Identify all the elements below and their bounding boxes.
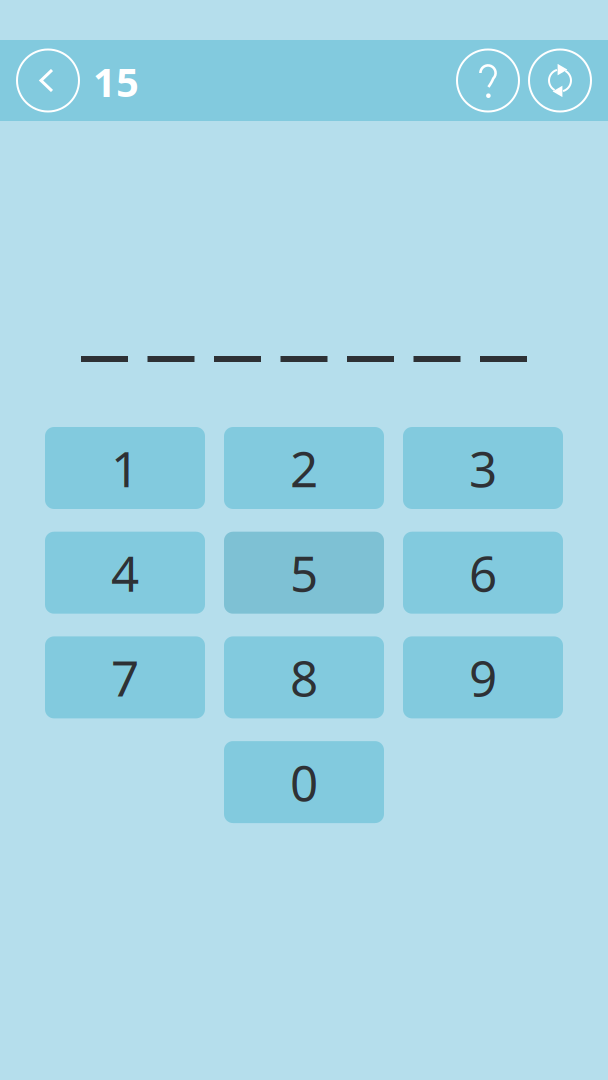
button[interactable]: Restart [529, 49, 591, 111]
button[interactable]: 7 [45, 636, 205, 718]
button[interactable]: 9 [403, 636, 563, 718]
staticText: 4 [111, 540, 139, 605]
button[interactable]: 0 [224, 741, 384, 823]
button[interactable]: 4 [45, 532, 205, 614]
staticText: 1 [111, 435, 139, 501]
staticText: 5 [290, 540, 318, 605]
button[interactable]: Hint [457, 49, 519, 111]
staticText: 15 [93, 55, 139, 108]
staticText: 0 [290, 749, 318, 815]
staticText: 7 [111, 645, 139, 710]
button[interactable]: 6 [403, 532, 563, 614]
button[interactable]: 3 [403, 427, 563, 509]
staticText: 2 [290, 435, 318, 501]
staticText: 6 [469, 540, 497, 605]
staticText: 9 [469, 645, 497, 710]
button[interactable]: 5 [224, 532, 384, 614]
button[interactable]: 1 [45, 427, 205, 509]
staticText: 8 [290, 645, 318, 710]
button[interactable]: Back [17, 49, 79, 111]
staticText: 3 [469, 435, 497, 501]
button[interactable]: 8 [224, 636, 384, 718]
button[interactable]: 2 [224, 427, 384, 509]
